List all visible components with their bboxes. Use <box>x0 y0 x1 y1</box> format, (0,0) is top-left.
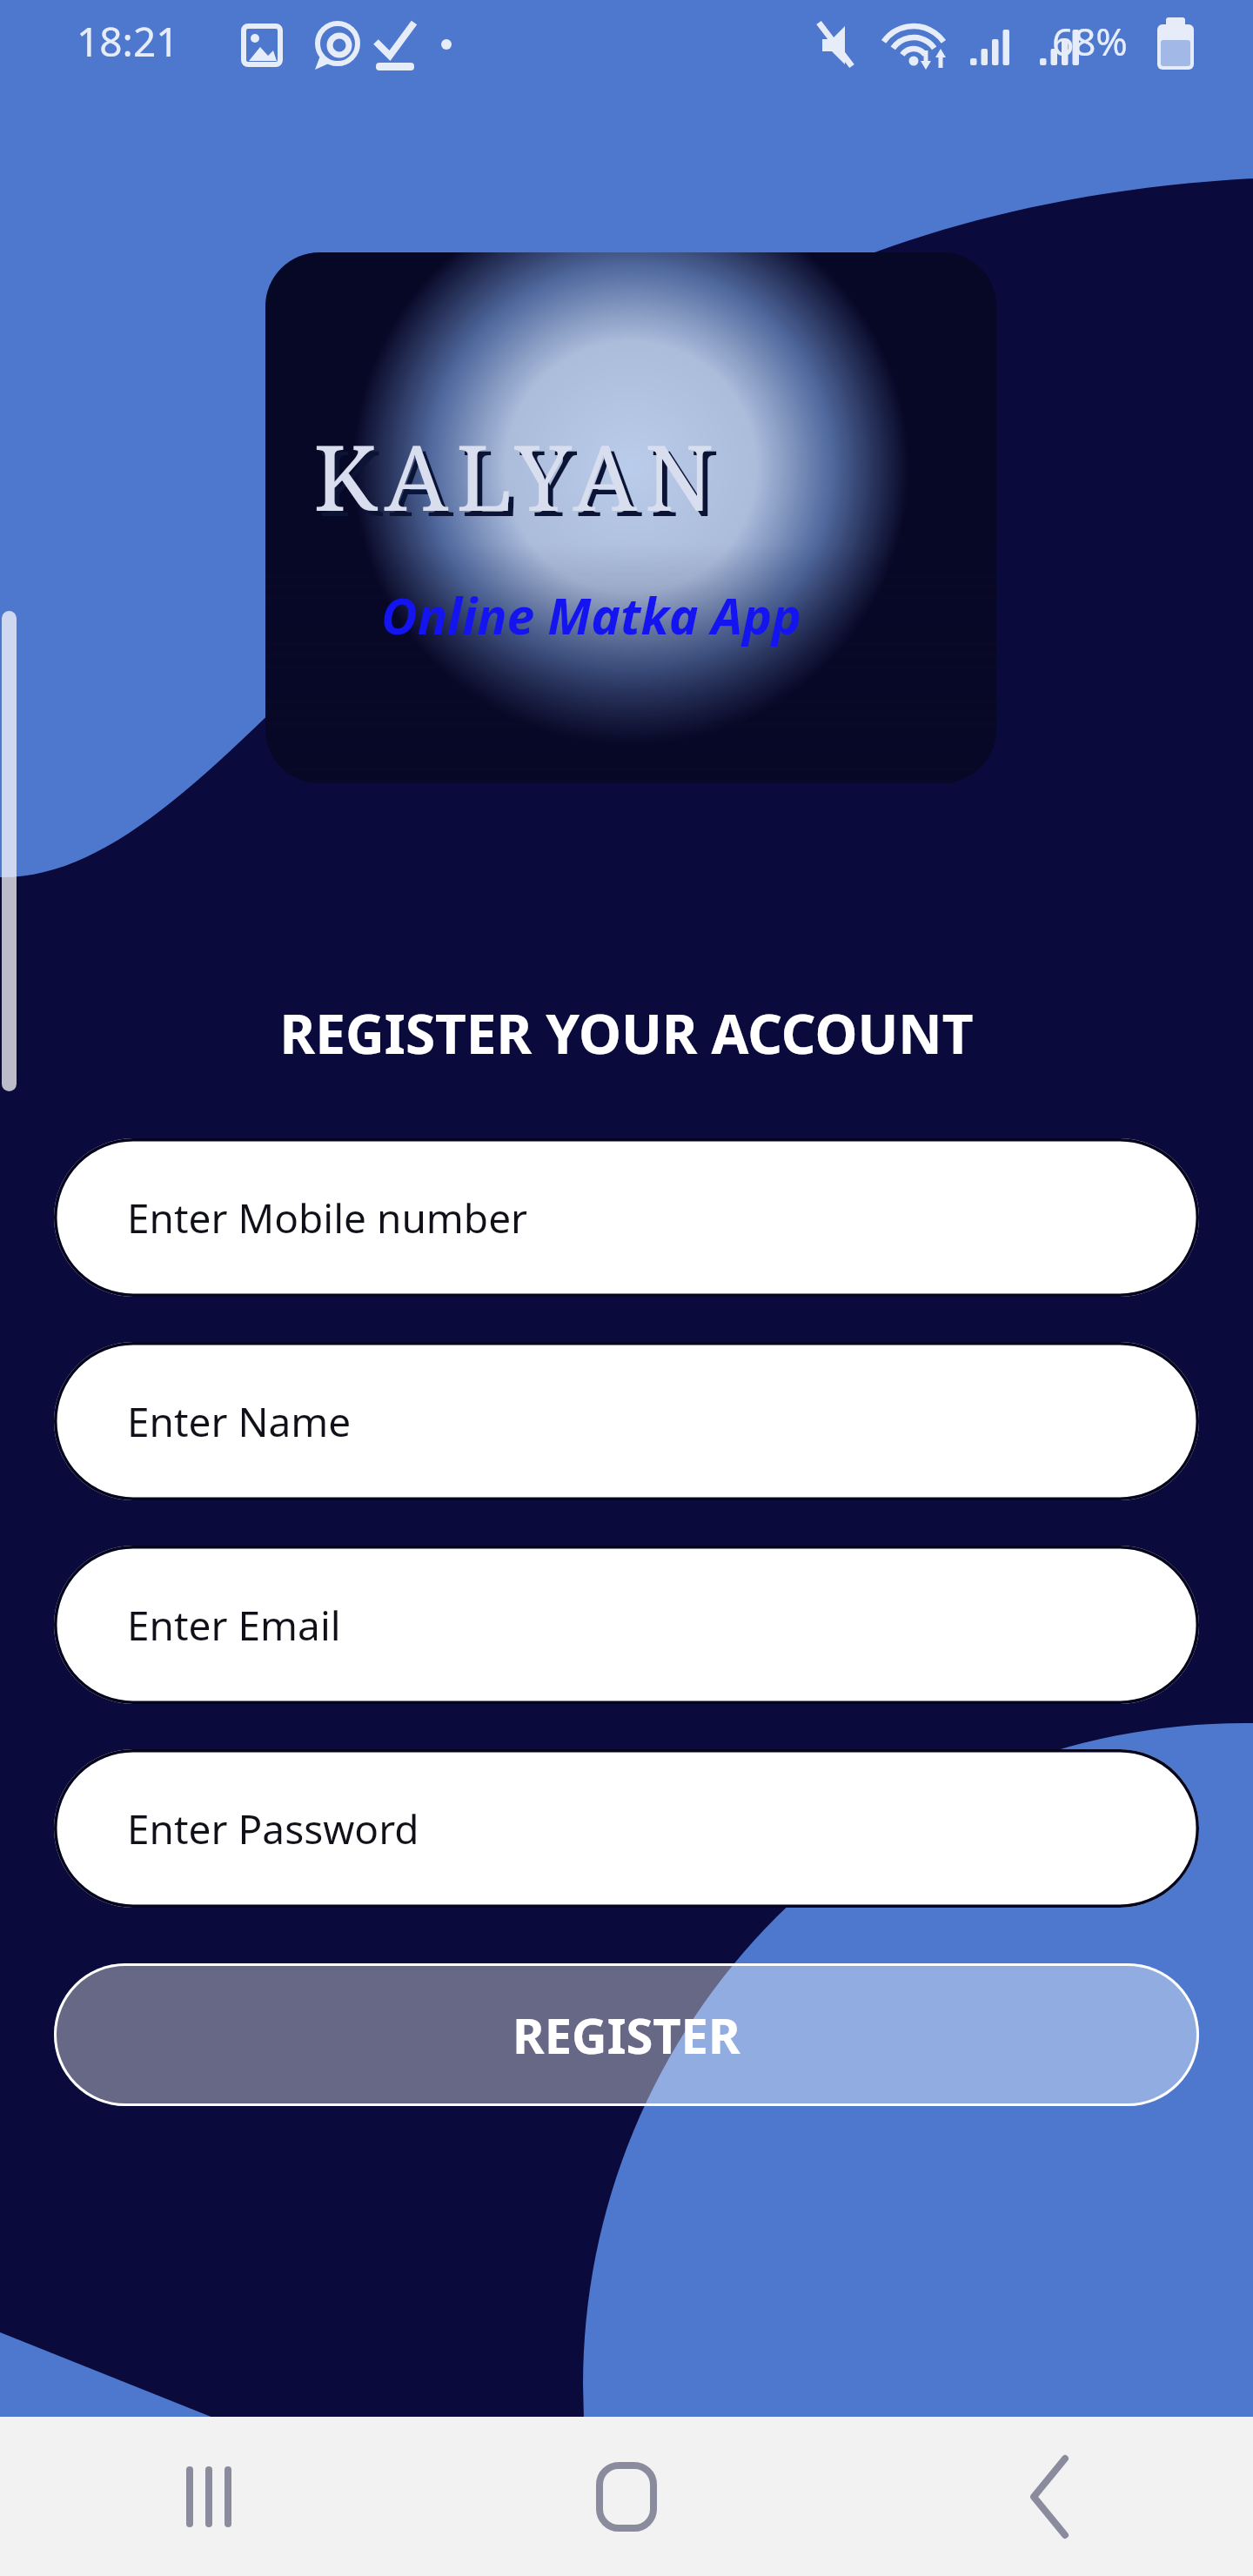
staticText: 18:21 <box>77 14 179 69</box>
staticText: Enter Password <box>127 1801 419 1856</box>
staticText: Enter Email <box>127 1598 341 1653</box>
button[interactable]: Enter Name <box>54 1342 1199 1500</box>
button[interactable]: Enter Email <box>54 1546 1199 1704</box>
staticText: Enter Name <box>127 1394 352 1449</box>
staticText: Enter Mobile number <box>127 1191 528 1245</box>
button[interactable]: Home <box>418 2417 835 2576</box>
staticText: Online Matka App <box>381 581 802 649</box>
button[interactable]: Recent apps <box>0 2417 418 2576</box>
staticText: REGISTER YOUR ACCOUNT <box>0 996 1253 1070</box>
staticText: KALYAN <box>313 414 722 538</box>
button[interactable]: Enter Mobile number <box>54 1138 1199 1297</box>
button[interactable]: Enter Password <box>54 1749 1199 1908</box>
button[interactable]: Back <box>835 2417 1253 2576</box>
staticText: 68% <box>1052 15 1128 67</box>
button[interactable]: REGISTER <box>54 1963 1199 2106</box>
staticText: REGISTER <box>513 2002 740 2068</box>
staticText: KALYAN <box>318 419 727 543</box>
